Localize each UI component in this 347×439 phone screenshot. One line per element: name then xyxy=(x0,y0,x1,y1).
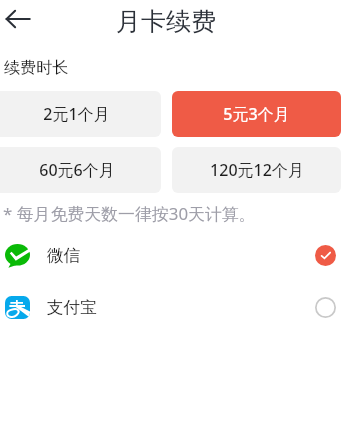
staticText: * 每月免费天数一律按30天计算。 xyxy=(3,202,256,225)
staticText: 支付宝 xyxy=(47,297,97,318)
button[interactable]: 60元6个月 xyxy=(0,147,161,193)
button[interactable]: 120元12个月 xyxy=(172,147,341,193)
button[interactable]: 5元3个月 xyxy=(172,91,341,137)
button[interactable]: 2元1个月 xyxy=(0,91,161,137)
staticText: 微信 xyxy=(47,245,81,266)
button[interactable]: 微信 xyxy=(0,244,347,267)
button[interactable]: 支付宝 xyxy=(0,296,347,319)
button[interactable]: Back xyxy=(4,5,31,32)
staticText: 续费时长 xyxy=(4,57,69,77)
staticText: 月卡续费 xyxy=(116,6,216,37)
staticText: 120元12个月 xyxy=(210,159,304,181)
staticText: 2元1个月 xyxy=(43,103,110,125)
staticText: 60元6个月 xyxy=(39,159,115,181)
staticText: 5元3个月 xyxy=(223,103,290,125)
